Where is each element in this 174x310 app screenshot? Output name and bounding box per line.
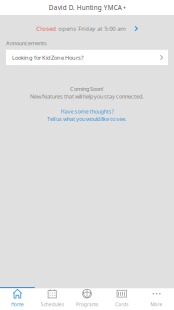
button[interactable]: Closed — [36, 23, 138, 34]
staticText: Have some thoughts? — [60, 108, 113, 115]
staticText: ▾ — [123, 5, 125, 10]
staticText: Home — [11, 301, 24, 308]
button[interactable]: Home — [0, 288, 35, 310]
button[interactable]: Schedules — [35, 288, 70, 310]
button[interactable]: More — [139, 288, 174, 310]
button[interactable]: Have some thoughts? — [47, 108, 127, 123]
button[interactable]: David D. Hunting YMCA — [0, 0, 174, 15]
staticText: opens Friday at 5:00 am — [56, 24, 126, 33]
staticText: David D. Hunting YMCA — [49, 3, 122, 12]
staticText: Tell us what you would like to see. — [47, 115, 127, 123]
staticText: Cards — [115, 301, 128, 308]
staticText: Schedules — [41, 301, 64, 308]
button[interactable]: Programs — [70, 288, 104, 310]
staticText: More — [151, 301, 163, 308]
staticText: Looking for KidZone Hours? — [12, 53, 83, 61]
staticText: Announcements — [6, 39, 47, 47]
button[interactable]: Looking for KidZone Hours? — [6, 50, 168, 65]
button[interactable]: Cards — [104, 288, 139, 310]
staticText: Coming Soon! — [70, 85, 104, 93]
staticText: New features that will help you stay con… — [30, 92, 144, 100]
staticText: Closed — [36, 24, 56, 33]
staticText: Programs — [76, 301, 98, 308]
